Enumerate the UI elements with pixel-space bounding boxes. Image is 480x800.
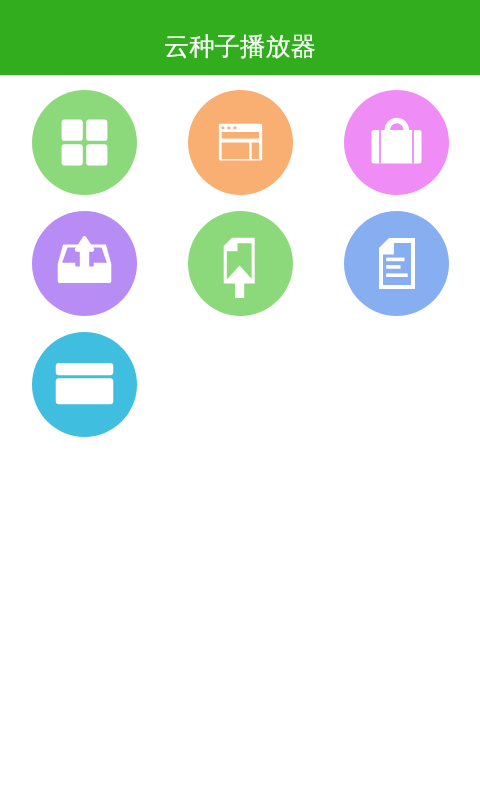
button[interactable]: Payment card — [32, 332, 137, 437]
button[interactable]: Upload file — [188, 211, 293, 316]
staticText: 云种子播放器 — [164, 31, 316, 63]
button[interactable]: Documents — [344, 211, 449, 316]
button[interactable]: Browser — [188, 90, 293, 195]
button[interactable]: 云种子播放器 — [0, 0, 480, 75]
button[interactable]: Briefcase — [344, 90, 449, 195]
button[interactable]: Upload — [32, 211, 137, 316]
button[interactable]: Apps — [32, 90, 137, 195]
